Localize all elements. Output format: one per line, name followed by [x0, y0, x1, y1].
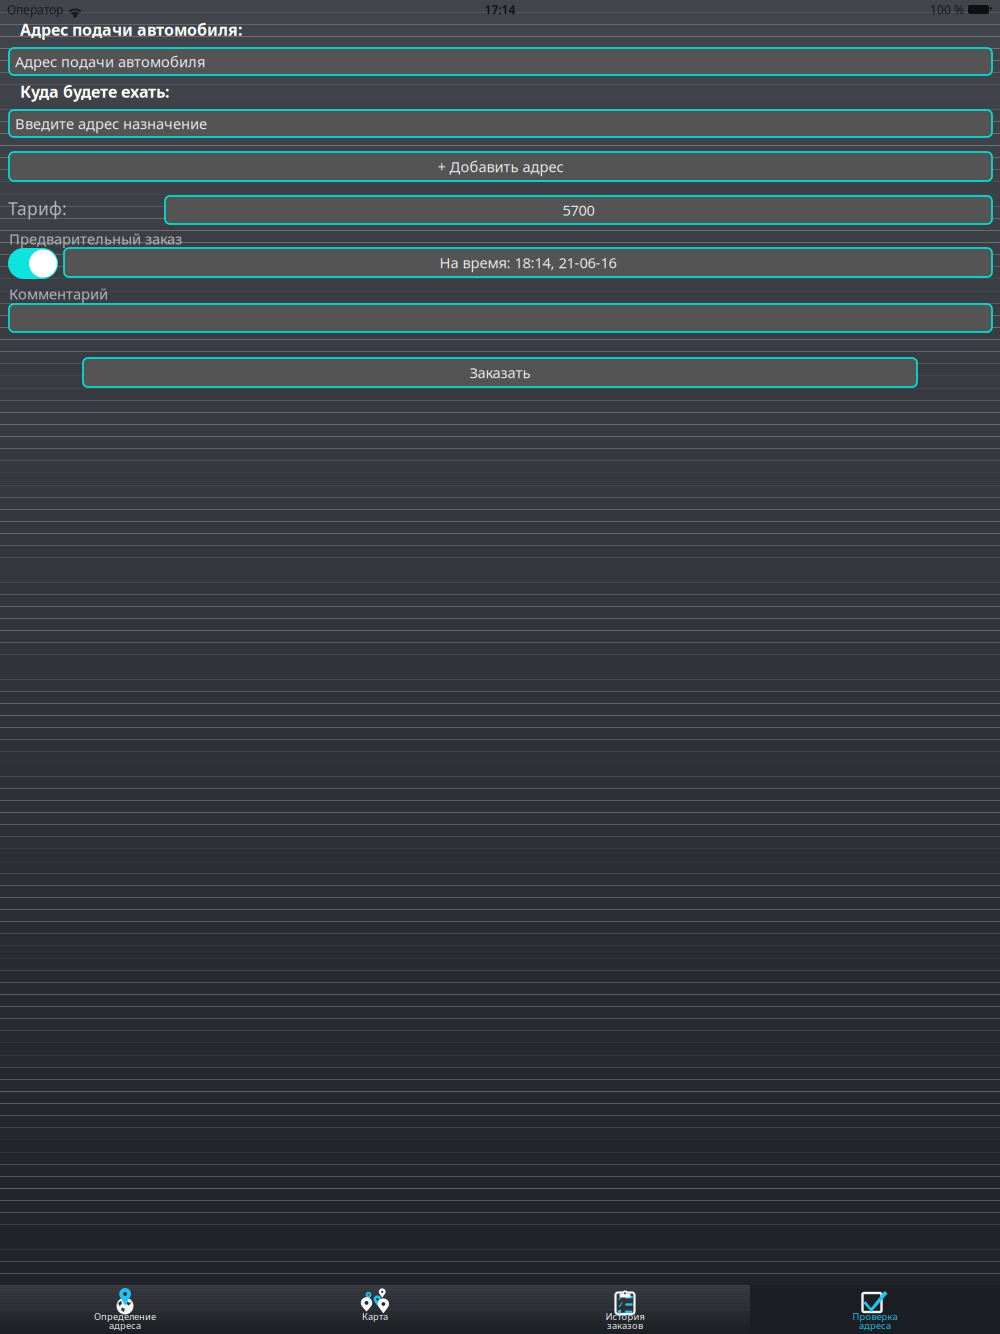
button[interactable]: Карта	[250, 1285, 500, 1334]
staticText: Куда будете ехать:	[20, 81, 169, 102]
button[interactable]: + Добавить адрес	[9, 152, 992, 181]
staticText: + Добавить адрес	[437, 157, 563, 176]
staticText: заказов	[607, 1319, 643, 1332]
staticText: Предварительный заказ	[9, 229, 182, 248]
staticText: Определение	[94, 1310, 156, 1323]
staticText: 100 %	[930, 1, 964, 17]
button[interactable]: Заказать	[83, 358, 917, 387]
button[interactable]: Проверка	[750, 1285, 1000, 1334]
staticText: 5700	[562, 200, 594, 220]
button[interactable]: Предварительный заказ	[8, 248, 58, 279]
staticText: Адрес подачи автомобиля	[15, 52, 205, 71]
staticText: адреса	[109, 1319, 141, 1332]
staticText: История	[605, 1310, 644, 1323]
button[interactable]: Определение	[0, 1285, 250, 1334]
staticText: Оператор	[7, 1, 63, 17]
staticText: Тариф:	[8, 197, 67, 220]
staticText: Введите адрес назначение	[15, 114, 207, 133]
staticText: Заказать	[469, 363, 530, 382]
staticText: На время: 18:14, 21-06-16	[439, 253, 616, 272]
staticText: Комментарий	[9, 284, 108, 303]
button[interactable]: История	[500, 1285, 750, 1334]
staticText: адреса	[859, 1319, 891, 1332]
staticText: 17:14	[484, 1, 515, 17]
staticText: Карта	[362, 1310, 388, 1323]
staticText: Проверка	[852, 1310, 897, 1323]
staticText: Адрес подачи автомобиля:	[20, 19, 242, 40]
